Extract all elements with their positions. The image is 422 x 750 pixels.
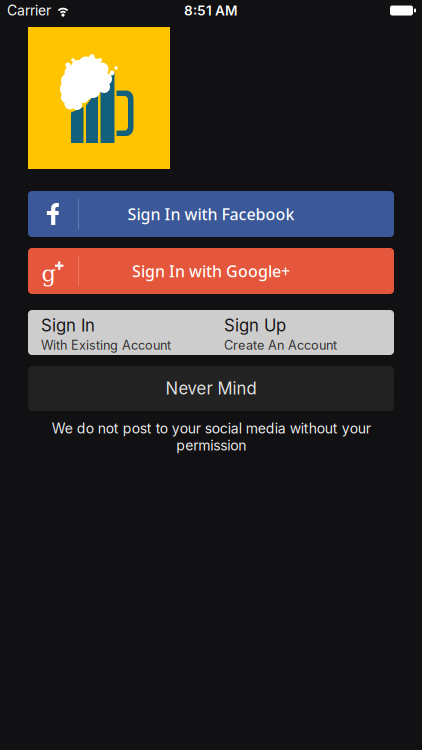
- button[interactable]: Sign In with Facebook: [28, 191, 394, 237]
- button[interactable]: Never Mind: [28, 366, 394, 411]
- staticText: Sign Up: [224, 315, 286, 335]
- staticText: 8:51 AM: [184, 2, 238, 19]
- staticText: g: [41, 260, 56, 287]
- button[interactable]: Sign Up: [211, 310, 394, 355]
- button[interactable]: Sign In: [28, 310, 211, 355]
- staticText: With Existing Account: [41, 337, 171, 353]
- staticText: We do not post to your social media with…: [51, 420, 370, 454]
- button[interactable]: g: [28, 248, 394, 294]
- staticText: Sign In: [41, 315, 95, 335]
- staticText: Sign In with Google+: [132, 260, 290, 282]
- staticText: Sign In with Facebook: [127, 203, 294, 225]
- staticText: Never Mind: [165, 378, 256, 399]
- staticText: Carrier: [7, 2, 51, 19]
- staticText: Create An Account: [224, 337, 337, 353]
